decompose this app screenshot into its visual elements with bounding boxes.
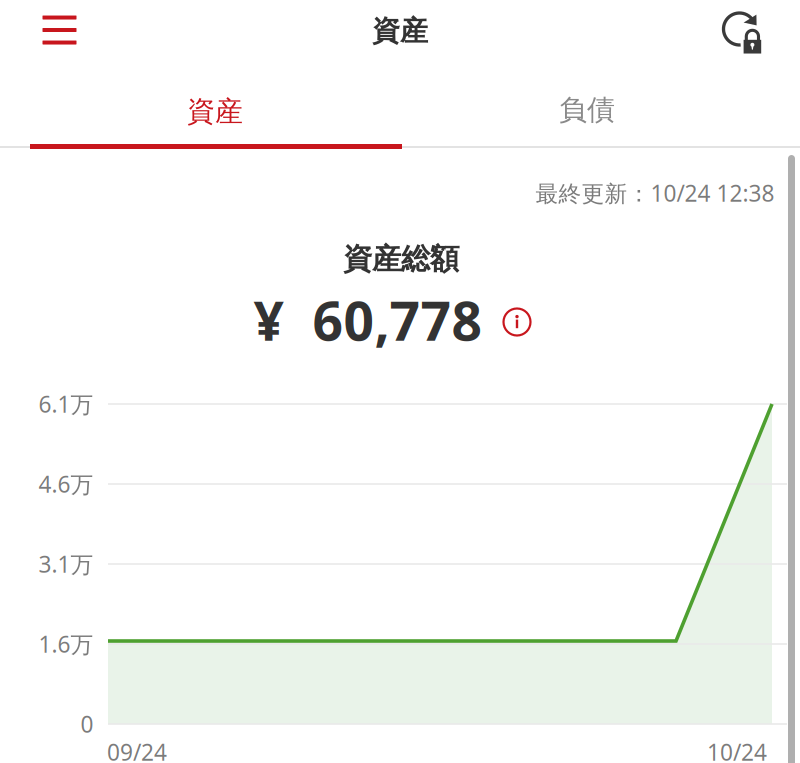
button[interactable]: Refresh accounts	[710, 0, 772, 62]
staticText: 資産総額	[343, 241, 459, 277]
staticText: 4.6万	[38, 469, 93, 499]
button[interactable]: 資産	[0, 72, 400, 148]
button[interactable]: Menu	[26, 0, 92, 61]
staticText: 6.1万	[38, 389, 93, 419]
staticText: 10/24	[707, 737, 767, 763]
staticText: 資産	[372, 14, 428, 48]
staticText: 最終更新：10/24 12:38	[535, 178, 774, 208]
staticText: 1.6万	[38, 629, 93, 659]
staticText: ¥ 60,778	[253, 285, 482, 355]
button[interactable]: About total assets	[503, 308, 531, 336]
staticText: 負債	[559, 93, 615, 127]
button[interactable]: 負債	[387, 72, 787, 148]
staticText: 3.1万	[38, 549, 93, 579]
staticText: 09/24	[107, 737, 167, 763]
staticText: 資産	[187, 94, 243, 129]
staticText: 0	[80, 709, 93, 739]
